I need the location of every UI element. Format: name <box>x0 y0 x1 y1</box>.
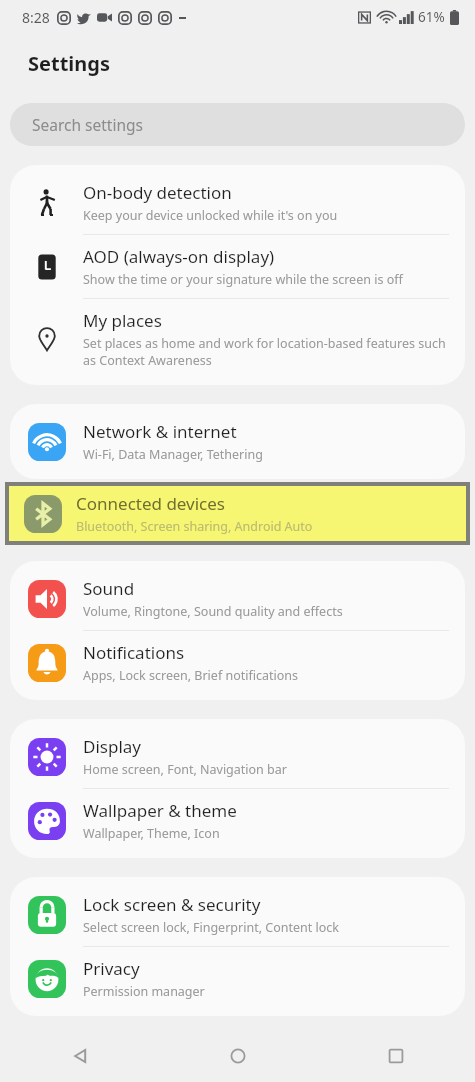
staticText: 8:28 <box>22 8 50 27</box>
button[interactable]: Home <box>159 1029 317 1082</box>
button[interactable]: Notifications <box>10 631 465 694</box>
button[interactable]: Lock screen & security <box>10 883 465 946</box>
staticText: AOD (always-on display) <box>83 245 275 268</box>
staticText: Lock screen & security <box>83 893 261 916</box>
staticText: Keep your device unlocked while it's on … <box>83 207 338 224</box>
staticText: Wallpaper, Theme, Icon <box>83 825 220 842</box>
button[interactable]: Wallpaper & theme <box>10 789 465 852</box>
staticText: 61% <box>418 8 445 26</box>
staticText: Apps, Lock screen, Brief notifications <box>83 667 299 684</box>
staticText: Wallpaper & theme <box>83 799 237 822</box>
staticText: Volume, Ringtone, Sound quality and effe… <box>83 603 343 620</box>
staticText: Network & internet <box>83 420 237 443</box>
button[interactable]: Sound <box>10 567 465 630</box>
button[interactable]: My places <box>10 299 465 379</box>
button[interactable]: Recent apps <box>317 1029 475 1082</box>
staticText: Select screen lock, Fingerprint, Content… <box>83 919 339 936</box>
staticText: Privacy <box>83 957 140 980</box>
staticText: Connected devices <box>76 492 226 515</box>
button[interactable]: Back <box>0 1029 159 1082</box>
button[interactable]: Display <box>10 725 465 788</box>
staticText: Show the time or your signature while th… <box>83 271 403 288</box>
staticText: Notifications <box>83 641 185 664</box>
button[interactable]: Network & internet <box>10 410 465 473</box>
staticText: On-body detection <box>83 181 232 204</box>
button[interactable]: Connected devices <box>9 486 466 541</box>
staticText: Home screen, Font, Navigation bar <box>83 761 287 778</box>
staticText: Settings <box>28 50 110 77</box>
staticText: Bluetooth, Screen sharing, Android Auto <box>76 518 313 535</box>
button[interactable]: Search settings <box>10 103 465 146</box>
button[interactable]: Privacy <box>10 947 465 1010</box>
staticText: Set places as home and work for location… <box>83 335 447 369</box>
button[interactable]: AOD (always-on display) <box>10 235 465 298</box>
button[interactable]: On-body detection <box>10 171 465 234</box>
staticText: Permission manager <box>83 983 205 1000</box>
staticText: Wi-Fi, Data Manager, Tethering <box>83 446 263 463</box>
staticText: Display <box>83 735 141 758</box>
staticText: Search settings <box>32 114 143 135</box>
staticText: My places <box>83 309 162 332</box>
staticText: Sound <box>83 577 135 600</box>
